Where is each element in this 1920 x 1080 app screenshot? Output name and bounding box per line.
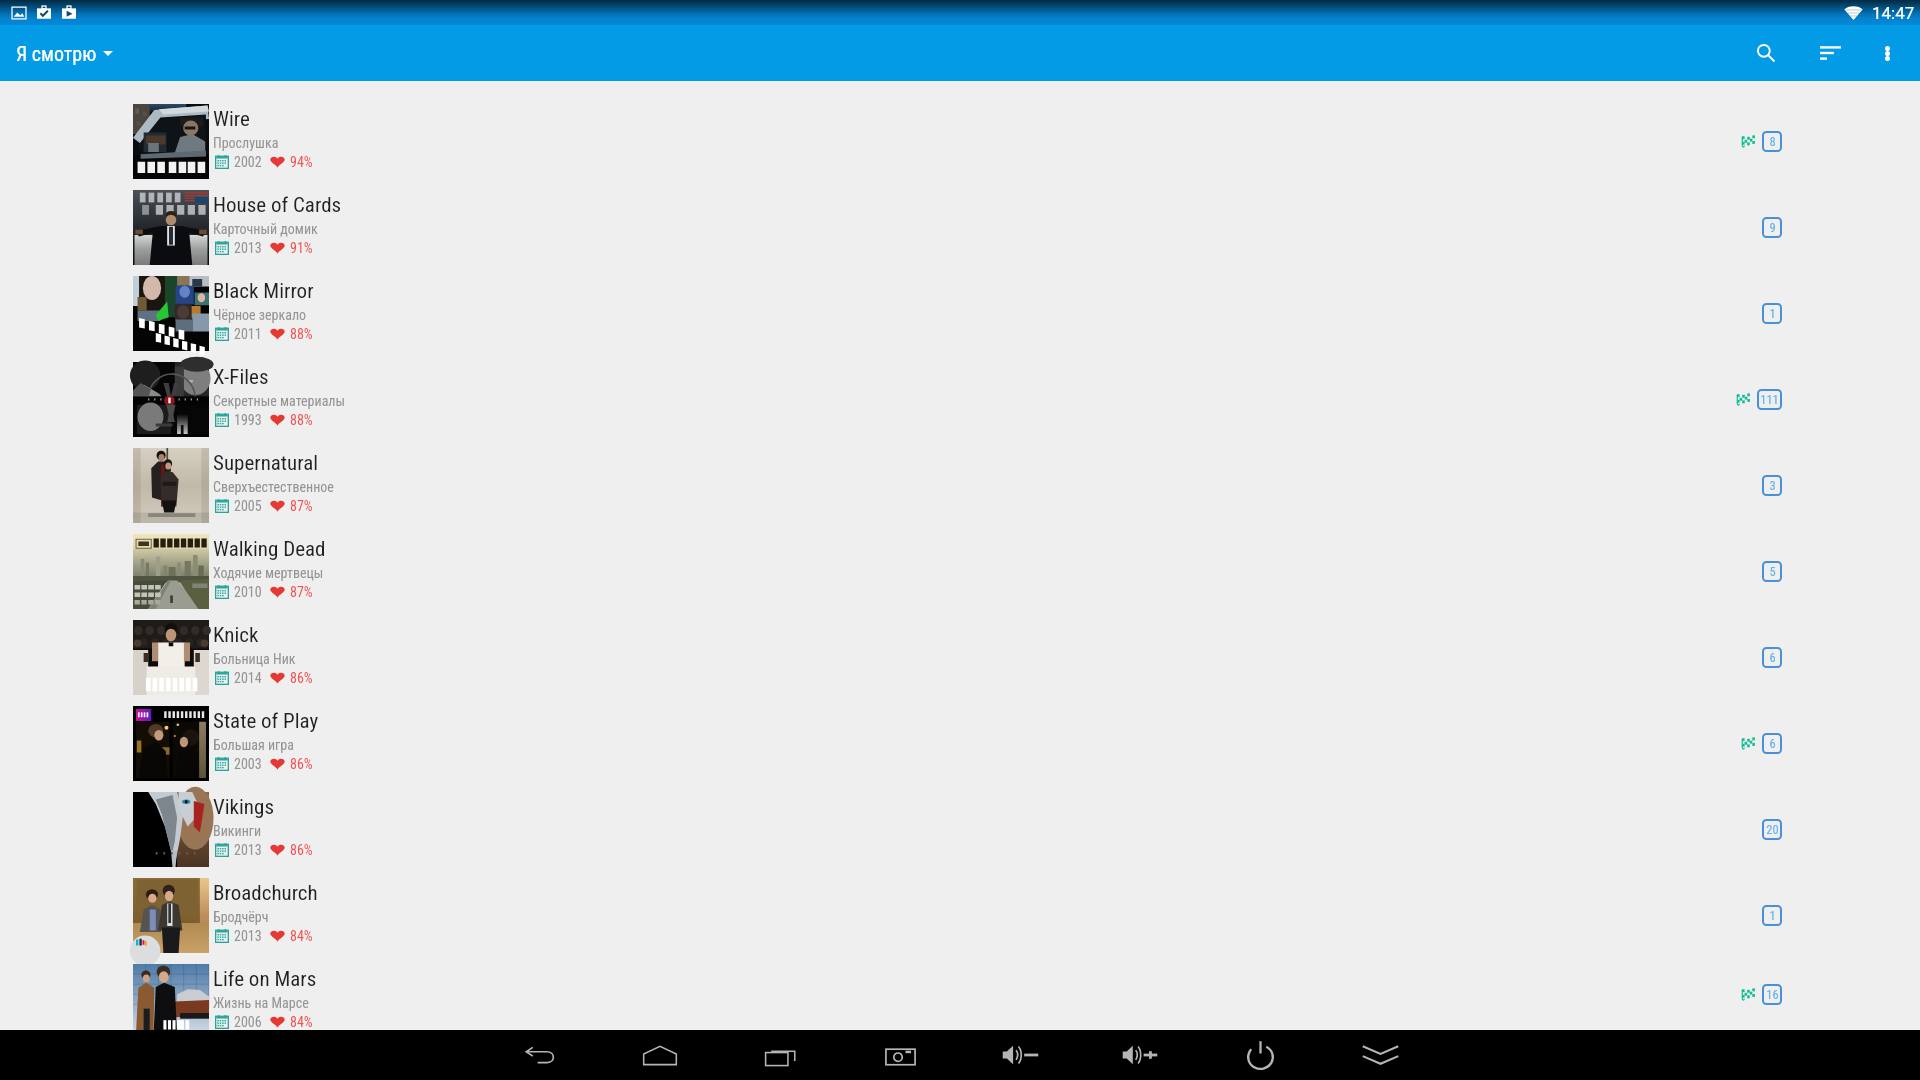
button[interactable]: Knick xyxy=(0,614,1920,700)
staticText: 6 xyxy=(1769,650,1776,665)
staticText: Ходячие мертвецы xyxy=(213,565,324,581)
button[interactable]: X-Files xyxy=(0,356,1920,442)
staticText: 2011 xyxy=(234,326,262,342)
staticText: Жизнь на Марсе xyxy=(213,995,309,1011)
staticText: 20 xyxy=(1766,822,1779,837)
button[interactable]: Broadchurch xyxy=(0,872,1920,958)
staticText: Секретные материалы xyxy=(213,393,346,409)
staticText: 86% xyxy=(290,756,313,772)
staticText: Больница Ник xyxy=(213,651,296,667)
staticText: 2013 xyxy=(234,240,262,256)
button[interactable]: Volume down xyxy=(995,1030,1045,1080)
button[interactable]: Я смотрю xyxy=(14,36,115,71)
staticText: 9 xyxy=(1769,220,1776,235)
button[interactable]: Life on Mars xyxy=(0,958,1920,1030)
staticText: 1 xyxy=(1769,908,1776,923)
staticText: 14:47 xyxy=(1872,3,1915,23)
staticText: Broadchurch xyxy=(213,881,318,906)
staticText: State of Play xyxy=(213,709,319,734)
staticText: Бродчёрч xyxy=(213,909,269,925)
staticText: House of Cards xyxy=(213,193,342,218)
staticText: 87% xyxy=(290,584,313,600)
staticText: 2013 xyxy=(234,842,262,858)
button[interactable]: Wire xyxy=(0,98,1920,184)
staticText: Walking Dead xyxy=(213,537,326,562)
staticText: Я смотрю xyxy=(16,42,97,65)
staticText: 88% xyxy=(290,412,313,428)
button[interactable]: Home xyxy=(635,1030,685,1080)
staticText: 1993 xyxy=(234,412,262,428)
staticText: 88% xyxy=(290,326,313,342)
staticText: 3 xyxy=(1769,478,1776,493)
staticText: 2013 xyxy=(234,928,262,944)
staticText: 2003 xyxy=(234,756,262,772)
staticText: 86% xyxy=(290,670,313,686)
staticText: Black Mirror xyxy=(213,279,314,304)
staticText: Викинги xyxy=(213,823,262,839)
staticText: Vikings xyxy=(213,795,274,820)
staticText: 2010 xyxy=(234,584,262,600)
staticText: 86% xyxy=(290,842,313,858)
staticText: 1 xyxy=(1769,306,1776,321)
staticText: 2014 xyxy=(234,670,262,686)
staticText: 2005 xyxy=(234,498,262,514)
button[interactable]: Recents xyxy=(755,1030,805,1080)
staticText: 16 xyxy=(1766,987,1779,1002)
button[interactable]: Collapse xyxy=(1355,1030,1405,1080)
staticText: Wire xyxy=(213,107,250,132)
button[interactable]: Power xyxy=(1235,1030,1285,1080)
button[interactable]: Vikings xyxy=(0,786,1920,872)
button[interactable]: Back xyxy=(515,1030,565,1080)
staticText: Чёрное зеркало xyxy=(213,307,307,323)
button[interactable]: House of Cards xyxy=(0,184,1920,270)
button[interactable]: Black Mirror xyxy=(0,270,1920,356)
staticText: 111 xyxy=(1760,392,1779,407)
staticText: Life on Mars xyxy=(213,967,317,992)
staticText: Сверхъестественное xyxy=(213,479,334,495)
button[interactable]: More options xyxy=(1862,25,1912,81)
button[interactable]: Sort xyxy=(1798,25,1862,81)
staticText: X-Files xyxy=(213,365,269,390)
staticText: Карточный домик xyxy=(213,221,318,237)
button[interactable]: Volume up xyxy=(1115,1030,1165,1080)
staticText: 2002 xyxy=(234,154,262,170)
staticText: 6 xyxy=(1769,736,1776,751)
staticText: 91% xyxy=(290,240,313,256)
button[interactable]: Walking Dead xyxy=(0,528,1920,614)
button[interactable]: Supernatural xyxy=(0,442,1920,528)
staticText: 94% xyxy=(290,154,313,170)
staticText: 87% xyxy=(290,498,313,514)
staticText: Большая игра xyxy=(213,737,294,753)
button[interactable]: State of Play xyxy=(0,700,1920,786)
button[interactable]: Screenshot xyxy=(875,1030,925,1080)
staticText: 84% xyxy=(290,1014,313,1030)
staticText: Прослушка xyxy=(213,135,279,151)
staticText: Knick xyxy=(213,623,259,648)
staticText: 84% xyxy=(290,928,313,944)
staticText: Supernatural xyxy=(213,451,319,476)
staticText: 5 xyxy=(1769,564,1776,579)
staticText: 2006 xyxy=(234,1014,262,1030)
button[interactable]: Search xyxy=(1734,25,1798,81)
staticText: 8 xyxy=(1769,134,1776,149)
